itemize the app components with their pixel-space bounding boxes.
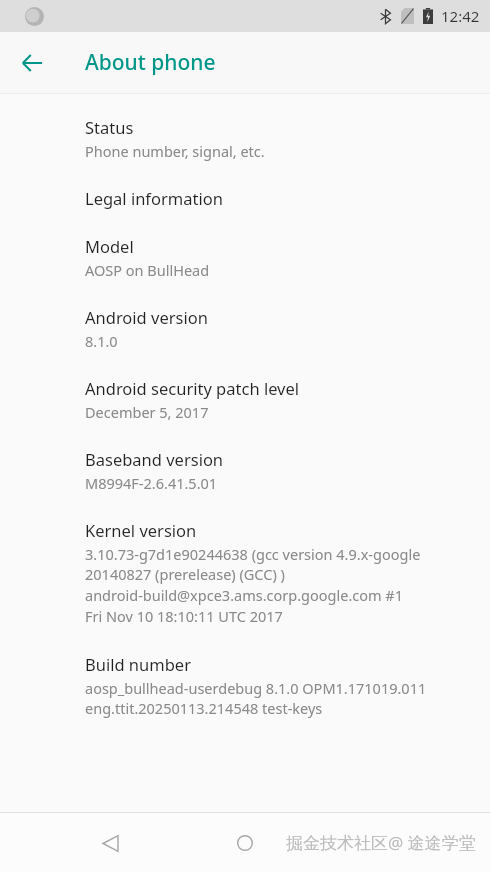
- staticText: 8.1.0: [85, 331, 118, 351]
- staticText: Kernel version: [85, 519, 197, 541]
- staticText: Build number: [85, 653, 191, 675]
- staticText: Model: [85, 235, 134, 257]
- button[interactable]: Kernel version: [0, 506, 490, 640]
- button[interactable]: Status: [0, 103, 490, 174]
- staticText: Baseband version: [85, 448, 224, 470]
- staticText: 3.10.73-g7d1e90244638 (gcc version 4.9.x…: [85, 544, 472, 627]
- staticText: AOSP on BullHead: [85, 260, 210, 280]
- staticText: Android security patch level: [85, 377, 300, 399]
- staticText: 12:42: [441, 6, 480, 26]
- staticText: Phone number, signal, etc.: [85, 141, 265, 161]
- button[interactable]: Back: [86, 819, 134, 867]
- button[interactable]: Legal information: [0, 174, 490, 222]
- staticText: December 5, 2017: [85, 402, 209, 422]
- button[interactable]: Android security patch level: [0, 364, 490, 435]
- button[interactable]: Android version: [0, 293, 490, 364]
- button[interactable]: Baseband version: [0, 435, 490, 506]
- staticText: Status: [85, 116, 134, 138]
- staticText: 掘金技术社区@ 途途学堂: [286, 831, 476, 854]
- button[interactable]: Home: [221, 819, 269, 867]
- button[interactable]: Back: [8, 39, 56, 87]
- staticText: M8994F-2.6.41.5.01: [85, 473, 218, 493]
- staticText: Legal information: [85, 187, 223, 209]
- staticText: Android version: [85, 306, 208, 328]
- button[interactable]: Build number: [0, 640, 490, 732]
- button[interactable]: Model: [0, 222, 490, 293]
- staticText: aosp_bullhead-userdebug 8.1.0 OPM1.17101…: [85, 678, 472, 719]
- staticText: About phone: [85, 48, 216, 77]
